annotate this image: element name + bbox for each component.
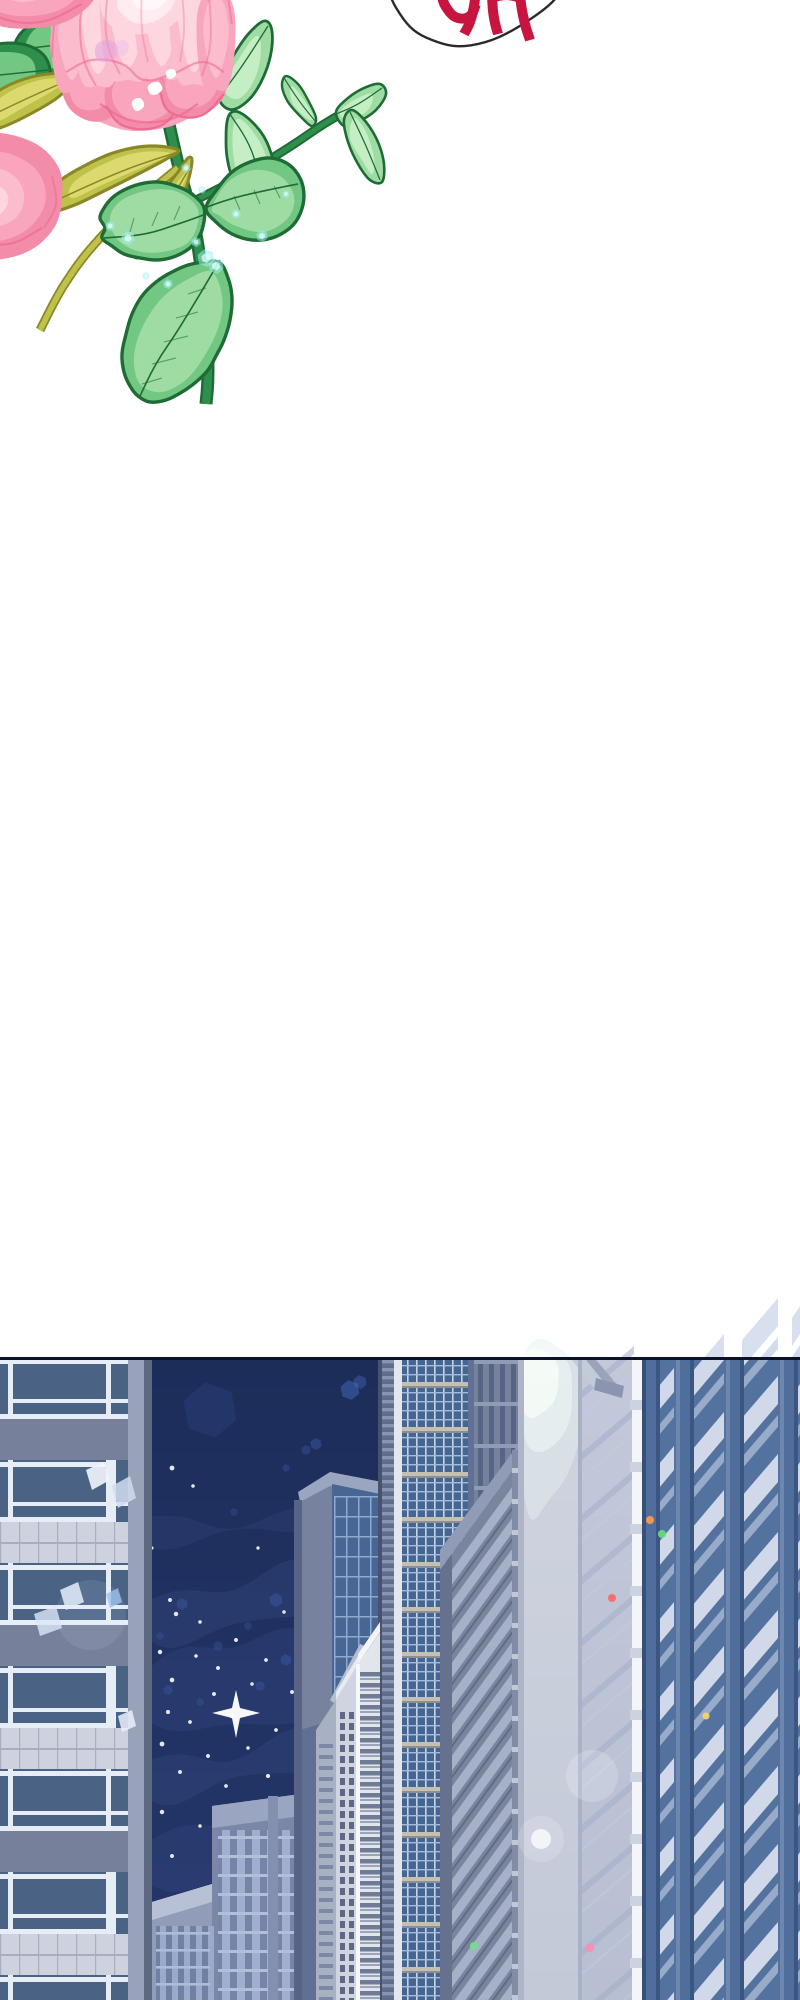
button[interactable]: Episode page, tap to show reader control… — [0, 0, 800, 2000]
